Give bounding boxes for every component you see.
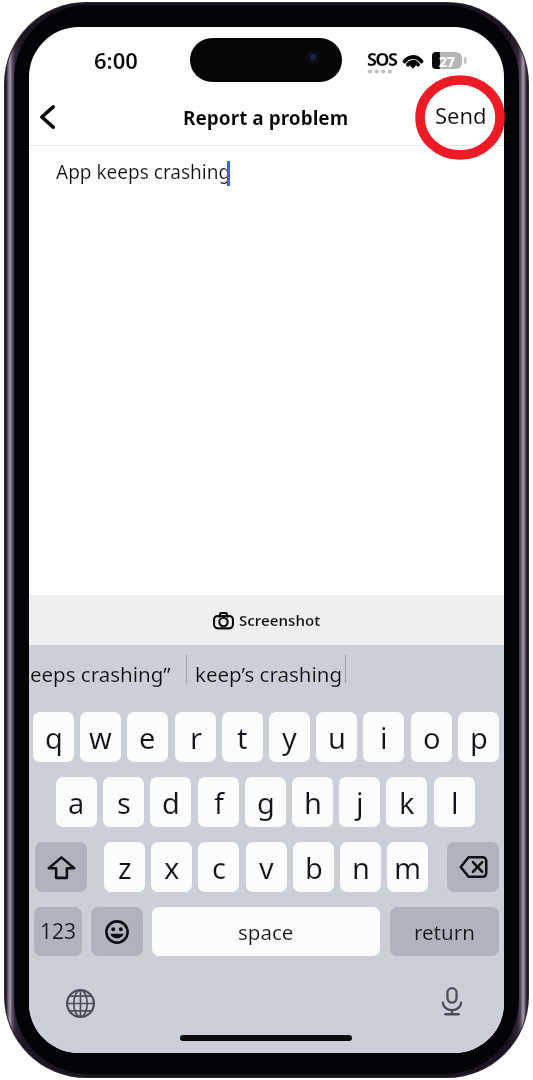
button[interactable]: t: [222, 712, 263, 762]
button[interactable]: Dictate: [434, 983, 470, 1019]
button[interactable]: v: [246, 842, 287, 892]
staticText: c: [212, 848, 226, 887]
button[interactable]: space: [152, 907, 380, 956]
button[interactable]: e: [127, 712, 168, 762]
button[interactable]: f: [198, 777, 239, 827]
staticText: z: [118, 848, 132, 887]
button[interactable]: j: [339, 777, 380, 827]
staticText: keep’s crashing: [195, 660, 343, 688]
button[interactable]: y: [269, 712, 310, 762]
button[interactable]: k: [386, 777, 427, 827]
staticText: f: [214, 783, 224, 822]
staticText: Report a problem: [183, 105, 349, 131]
button[interactable]: Send: [433, 94, 489, 136]
button[interactable]: r: [175, 712, 216, 762]
button[interactable]: Emoji: [91, 907, 143, 956]
staticText: 6:00: [94, 45, 138, 75]
button[interactable]: c: [198, 842, 239, 892]
staticText: 123: [40, 917, 77, 946]
button[interactable]: n: [340, 842, 381, 892]
button[interactable]: z: [104, 842, 145, 892]
staticText: v: [259, 848, 274, 887]
staticText: b: [305, 848, 323, 887]
staticText: keeps crashing”: [29, 660, 171, 688]
staticText: g: [257, 783, 275, 822]
button[interactable]: Back: [29, 92, 72, 142]
staticText: s: [117, 783, 131, 822]
staticText: d: [162, 783, 180, 822]
staticText: m: [394, 848, 422, 887]
staticText: SOS: [367, 47, 397, 72]
button[interactable]: d: [150, 777, 191, 827]
button[interactable]: l: [434, 777, 475, 827]
button[interactable]: p: [458, 712, 499, 762]
button[interactable]: a: [56, 777, 97, 827]
staticText: w: [89, 718, 112, 757]
button[interactable]: u: [316, 712, 357, 762]
staticText: 27: [439, 52, 456, 71]
button[interactable]: q: [33, 712, 74, 762]
staticText: h: [304, 783, 322, 822]
staticText: space: [238, 918, 294, 946]
staticText: p: [470, 718, 488, 757]
button[interactable]: o: [411, 712, 452, 762]
staticText: j: [356, 783, 364, 822]
staticText: return: [414, 918, 475, 946]
staticText: y: [282, 718, 297, 757]
staticText: u: [328, 718, 346, 757]
button[interactable]: s: [103, 777, 144, 827]
staticText: App keeps crashing: [56, 159, 231, 185]
staticText: t: [237, 718, 248, 757]
staticText: Screenshot: [239, 610, 321, 630]
button[interactable]: m: [387, 842, 428, 892]
staticText: k: [399, 783, 415, 822]
staticText: n: [352, 848, 370, 887]
button[interactable]: return: [390, 907, 499, 956]
button[interactable]: w: [80, 712, 121, 762]
staticText: i: [380, 718, 388, 757]
button[interactable]: Change keyboard: [62, 985, 98, 1021]
button[interactable]: Shift: [35, 842, 87, 892]
button[interactable]: g: [245, 777, 286, 827]
button[interactable]: b: [293, 842, 334, 892]
staticText: Send: [435, 100, 487, 130]
button[interactable]: h: [292, 777, 333, 827]
staticText: o: [423, 718, 441, 757]
staticText: q: [45, 718, 63, 757]
staticText: r: [190, 718, 202, 757]
button[interactable]: i: [363, 712, 404, 762]
staticText: a: [68, 783, 85, 822]
button[interactable]: Backspace: [447, 842, 499, 892]
button[interactable]: Screenshot: [29, 595, 504, 645]
staticText: x: [164, 848, 180, 887]
staticText: e: [139, 718, 156, 757]
button[interactable]: 123: [34, 907, 82, 956]
button[interactable]: x: [151, 842, 192, 892]
staticText: l: [451, 783, 459, 822]
